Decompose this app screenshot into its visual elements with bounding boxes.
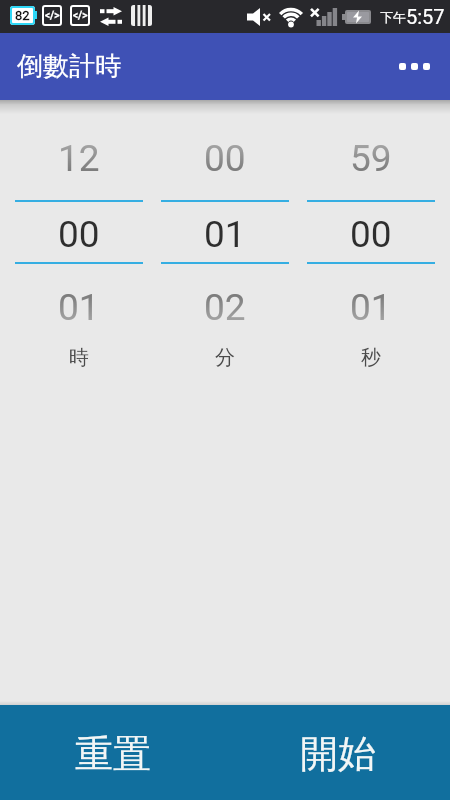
staticText: 5:57 (406, 5, 445, 28)
staticText: 重置 (75, 730, 151, 778)
staticText: 時 (69, 345, 89, 369)
button[interactable]: 開始 (225, 705, 450, 800)
staticText: 秒 (361, 345, 381, 369)
staticText: 下午 (380, 9, 406, 25)
staticText: 01 (350, 286, 392, 329)
staticText: 倒數計時 (17, 50, 121, 83)
staticText: </> (45, 10, 60, 22)
staticText: 00 (58, 213, 100, 256)
button[interactable] (399, 63, 430, 70)
staticText: 00 (204, 137, 246, 180)
staticText: 00 (350, 213, 392, 256)
button[interactable]: 重置 (0, 705, 225, 800)
staticText: 分 (215, 345, 235, 369)
staticText: 01 (204, 213, 246, 256)
staticText: 開始 (300, 730, 376, 778)
staticText: 82 (15, 8, 30, 23)
staticText: 02 (204, 286, 246, 329)
staticText: 12 (58, 137, 100, 180)
staticText: 59 (350, 137, 392, 180)
button[interactable]: 01 (204, 202, 246, 262)
button[interactable]: 00 (350, 202, 392, 262)
button[interactable]: 00 (58, 202, 100, 262)
staticText: 01 (58, 286, 100, 329)
staticText: </> (73, 10, 88, 22)
